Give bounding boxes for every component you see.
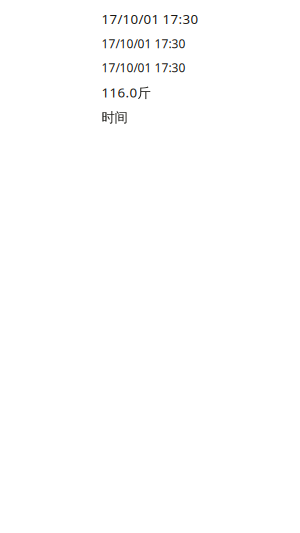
staticText: 时间 <box>101 109 127 126</box>
staticText: 17/10/01 17:30 <box>101 10 198 28</box>
staticText: 116.0斤 <box>101 84 150 101</box>
staticText: 17/10/01 17:30 <box>101 60 185 75</box>
staticText: 17/10/01 17:30 <box>101 36 185 52</box>
